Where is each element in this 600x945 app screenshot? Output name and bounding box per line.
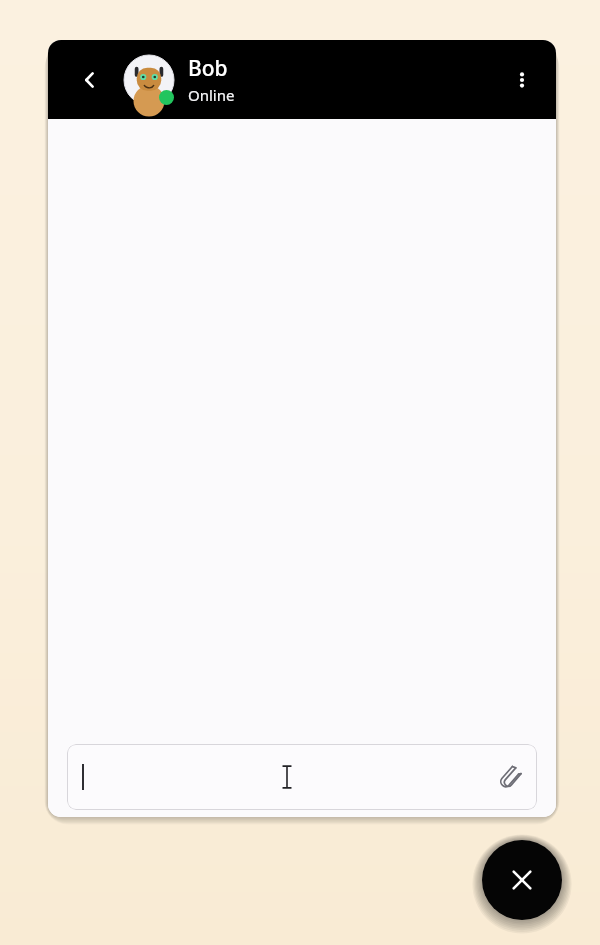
button[interactable]: Contact avatar bbox=[124, 55, 174, 105]
button[interactable]: Message input bbox=[67, 744, 537, 810]
button[interactable]: Attach file bbox=[489, 756, 531, 798]
button[interactable]: Back bbox=[72, 62, 108, 98]
button[interactable]: Close bbox=[482, 840, 562, 920]
button[interactable]: More options bbox=[502, 60, 542, 100]
staticText: Bob bbox=[188, 54, 228, 83]
staticText: Online bbox=[188, 85, 235, 105]
